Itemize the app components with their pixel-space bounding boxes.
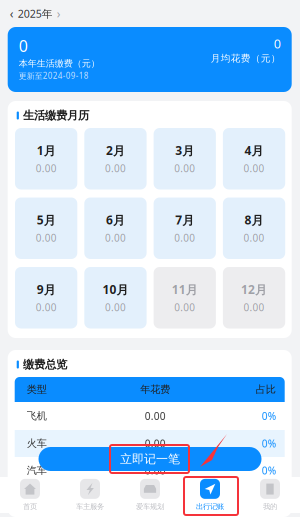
staticText: 2025年	[18, 6, 53, 21]
staticText: 7月	[175, 212, 194, 228]
staticText: 0.00	[36, 231, 57, 245]
button[interactable]: 车主服务	[60, 477, 120, 513]
staticText: 0.00	[105, 301, 126, 314]
staticText: 6月	[106, 212, 125, 228]
staticText: 年花费	[140, 383, 170, 396]
button[interactable]: 4月	[223, 128, 285, 189]
staticText: 1月	[37, 142, 56, 159]
staticText: 0%	[262, 409, 276, 423]
staticText: 出行记账	[196, 502, 224, 511]
staticText: 生活缴费月历	[23, 108, 89, 123]
button[interactable]: 3月	[154, 128, 216, 189]
staticText: 3月	[175, 142, 194, 159]
staticText: 11月	[172, 281, 198, 298]
staticText: 0.00	[145, 464, 166, 477]
staticText: 8月	[244, 212, 263, 228]
staticText: 火车	[27, 437, 47, 450]
staticText: 爱车规划	[136, 502, 164, 511]
staticText: 飞机	[27, 410, 47, 422]
staticText: 我的	[263, 502, 277, 511]
staticText: 首页	[23, 502, 37, 511]
staticText: 0.00	[36, 301, 57, 314]
button[interactable]: 2月	[84, 128, 147, 189]
staticText: 0.00	[105, 162, 126, 175]
staticText: 月均花费（元）	[211, 52, 281, 64]
staticText: 汽车	[27, 464, 47, 477]
button[interactable]: 6月	[84, 197, 147, 259]
button[interactable]: 我的	[240, 477, 300, 513]
button[interactable]: 12月	[223, 267, 285, 328]
staticText: 4月	[244, 142, 263, 159]
button[interactable]: 爱车规划	[120, 477, 180, 513]
staticText: 12月	[241, 281, 267, 298]
staticText: 缴费总览	[23, 357, 67, 372]
button[interactable]: 出行记账	[180, 477, 240, 513]
staticText: 0.00	[243, 301, 264, 314]
staticText: 0.00	[174, 162, 195, 175]
staticText: 占比	[256, 383, 276, 396]
button[interactable]: 5月	[15, 197, 77, 259]
staticText: 立即记一笔	[120, 451, 180, 466]
staticText: 更新至2024-09-18	[19, 70, 89, 81]
button[interactable]: 7月	[154, 197, 216, 259]
button[interactable]: ‹	[8, 0, 292, 27]
staticText: 0.00	[36, 162, 57, 175]
button[interactable]: 9月	[15, 267, 77, 328]
button[interactable]: 10月	[84, 267, 147, 328]
staticText: 0%	[262, 437, 276, 450]
staticText: 类型	[27, 383, 47, 396]
staticText: 10月	[102, 281, 128, 298]
staticText: 0.00	[145, 409, 166, 423]
staticText: ›	[57, 5, 61, 22]
staticText: 0	[274, 35, 281, 52]
staticText: 9月	[37, 281, 56, 298]
button[interactable]: 1月	[15, 128, 77, 189]
button[interactable]: 11月	[154, 267, 216, 328]
staticText: 5月	[37, 212, 56, 228]
button[interactable]: 8月	[223, 197, 285, 259]
staticText: 0.00	[243, 231, 264, 245]
staticText: 0.00	[145, 437, 166, 450]
staticText: 0%	[262, 464, 276, 477]
staticText: 本年生活缴费（元）	[19, 58, 100, 69]
staticText: 0.00	[105, 231, 126, 245]
staticText: 0.00	[243, 162, 264, 175]
staticText: 0.00	[174, 231, 195, 245]
staticText: ‹	[10, 5, 14, 22]
button[interactable]: 首页	[0, 477, 60, 513]
staticText: 2月	[106, 142, 125, 159]
staticText: 0	[19, 35, 28, 57]
button[interactable]: 立即记一笔	[38, 447, 261, 471]
staticText: 0.00	[174, 301, 195, 314]
staticText: 车主服务	[76, 502, 104, 511]
